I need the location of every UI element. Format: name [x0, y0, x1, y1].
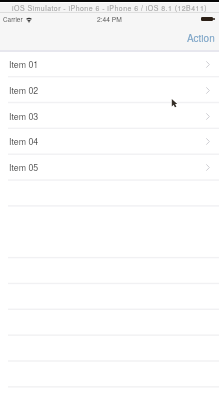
other: Open Item 04 [206, 138, 210, 145]
staticText: Item 03 [9, 110, 39, 123]
button[interactable]: Item 04 [0, 128, 219, 154]
staticText: Carrier [3, 15, 23, 24]
button[interactable]: Item 01 [0, 51, 219, 77]
staticText: Item 05 [9, 161, 39, 174]
other: Open Item 03 [206, 113, 210, 120]
other: Open Item 02 [206, 87, 210, 94]
button[interactable]: Item 02 [0, 77, 219, 103]
staticText: Item 01 [9, 58, 39, 71]
button[interactable]: Item 05 [0, 154, 219, 180]
staticText: Item 04 [9, 135, 39, 148]
other: Open Item 01 [206, 61, 210, 68]
staticText: iOS Simulator - iPhone 6 - iPhone 6 / iO… [12, 3, 208, 13]
other: Open Item 05 [206, 164, 210, 171]
button[interactable]: Action [177, 26, 219, 50]
staticText: Action [187, 31, 215, 45]
staticText: Item 02 [9, 84, 39, 97]
staticText: 2:44 PM [97, 14, 122, 24]
button[interactable]: Item 03 [0, 103, 219, 129]
other: Pointer [0, 0, 219, 403]
